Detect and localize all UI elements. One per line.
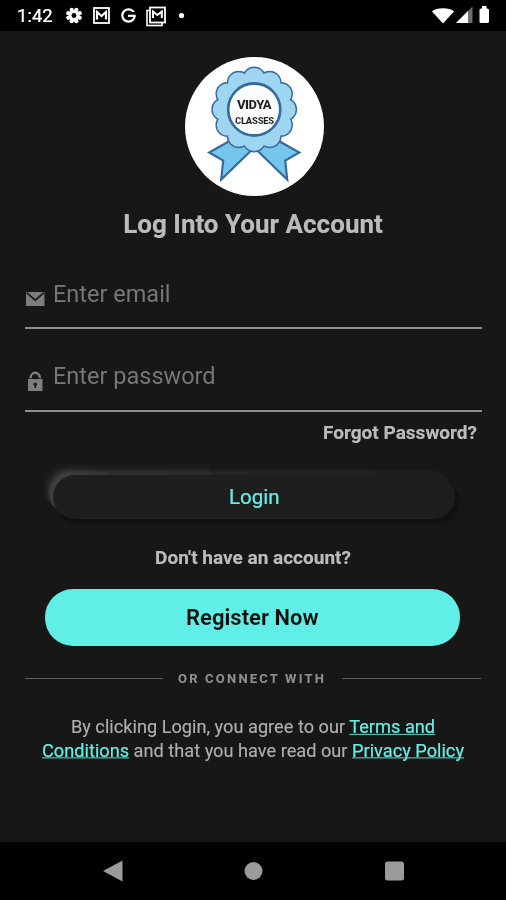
staticText: Forgot Password? — [323, 421, 478, 443]
staticText: Login — [229, 485, 280, 509]
staticText: CLASSES — [235, 115, 274, 126]
button[interactable]: Register Now — [45, 589, 460, 646]
staticText: VIDYA — [237, 97, 272, 112]
button[interactable]: Enter email — [25, 277, 482, 311]
staticText: Enter email — [53, 280, 171, 308]
staticText: By clicking Login, you agree to our Term… — [35, 716, 471, 761]
button[interactable]: Forgot Password? — [323, 421, 478, 443]
button[interactable]: Enter password — [25, 359, 482, 393]
button[interactable]: Back — [84, 842, 142, 900]
staticText: OR CONNECT WITH — [178, 671, 327, 686]
button[interactable]: Home — [224, 842, 282, 900]
staticText: Enter password — [53, 362, 216, 390]
staticText: Don't have an account? — [0, 546, 506, 568]
button[interactable]: Login — [53, 475, 455, 519]
staticText: Log Into Your Account — [0, 209, 506, 239]
staticText: 1:42 — [17, 5, 53, 27]
button[interactable]: Recent apps — [365, 842, 423, 900]
staticText: Register Now — [186, 605, 319, 631]
